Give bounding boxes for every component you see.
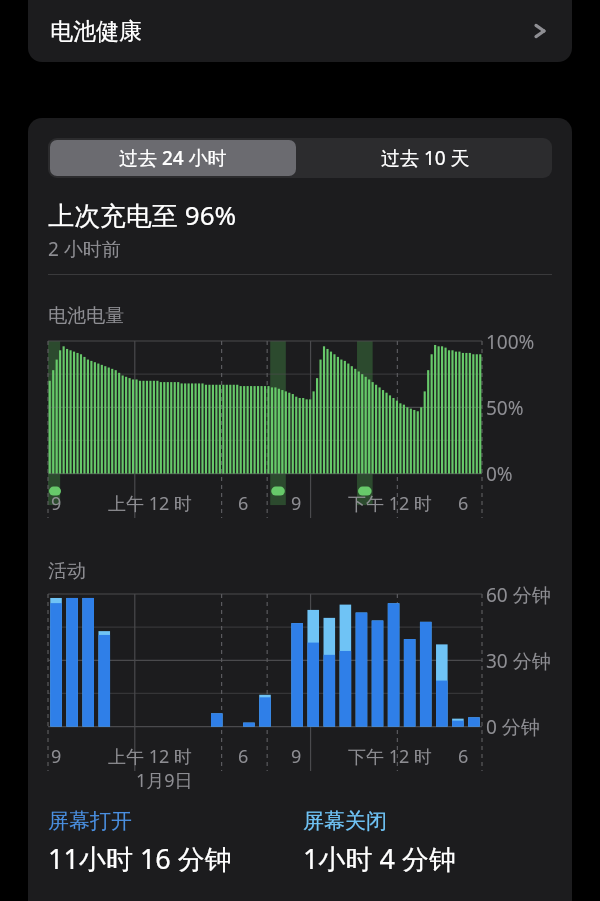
staticText: 6: [238, 491, 249, 516]
staticText: 6: [458, 491, 469, 516]
staticText: 屏幕关闭: [303, 808, 387, 834]
staticText: 上次充电至 96%: [48, 197, 237, 233]
staticText: 1月9日: [136, 768, 193, 793]
staticText: 9: [291, 744, 302, 769]
staticText: 过去 10 天: [381, 145, 470, 171]
staticText: 9: [51, 491, 62, 516]
staticText: 6: [458, 744, 469, 769]
staticText: 100%: [486, 329, 535, 355]
staticText: 过去 24 小时: [119, 145, 227, 171]
staticText: 11小时 16 分钟: [48, 840, 232, 877]
staticText: 下午 12 时: [348, 744, 432, 769]
button[interactable]: 电池健康: [28, 0, 572, 62]
staticText: 50%: [486, 395, 524, 421]
staticText: 0%: [486, 461, 513, 487]
staticText: 6: [238, 744, 249, 769]
staticText: 30 分钟: [486, 648, 551, 674]
staticText: 0 分钟: [486, 714, 540, 740]
staticText: 2 小时前: [48, 236, 121, 262]
staticText: 下午 12 时: [348, 491, 432, 516]
staticText: 9: [51, 744, 62, 769]
staticText: 电池健康: [50, 17, 142, 46]
staticText: 电池电量: [48, 304, 124, 328]
staticText: 60 分钟: [486, 582, 551, 608]
staticText: 1小时 4 分钟: [303, 840, 456, 877]
staticText: 上午 12 时: [108, 491, 192, 516]
staticText: 屏幕打开: [48, 808, 132, 834]
other: 电池健康: [530, 21, 550, 41]
button[interactable]: 过去 24 小时: [50, 140, 296, 176]
staticText: 9: [291, 491, 302, 516]
staticText: 上午 12 时: [108, 744, 192, 769]
staticText: 活动: [48, 559, 86, 583]
button[interactable]: 过去 10 天: [298, 138, 552, 178]
